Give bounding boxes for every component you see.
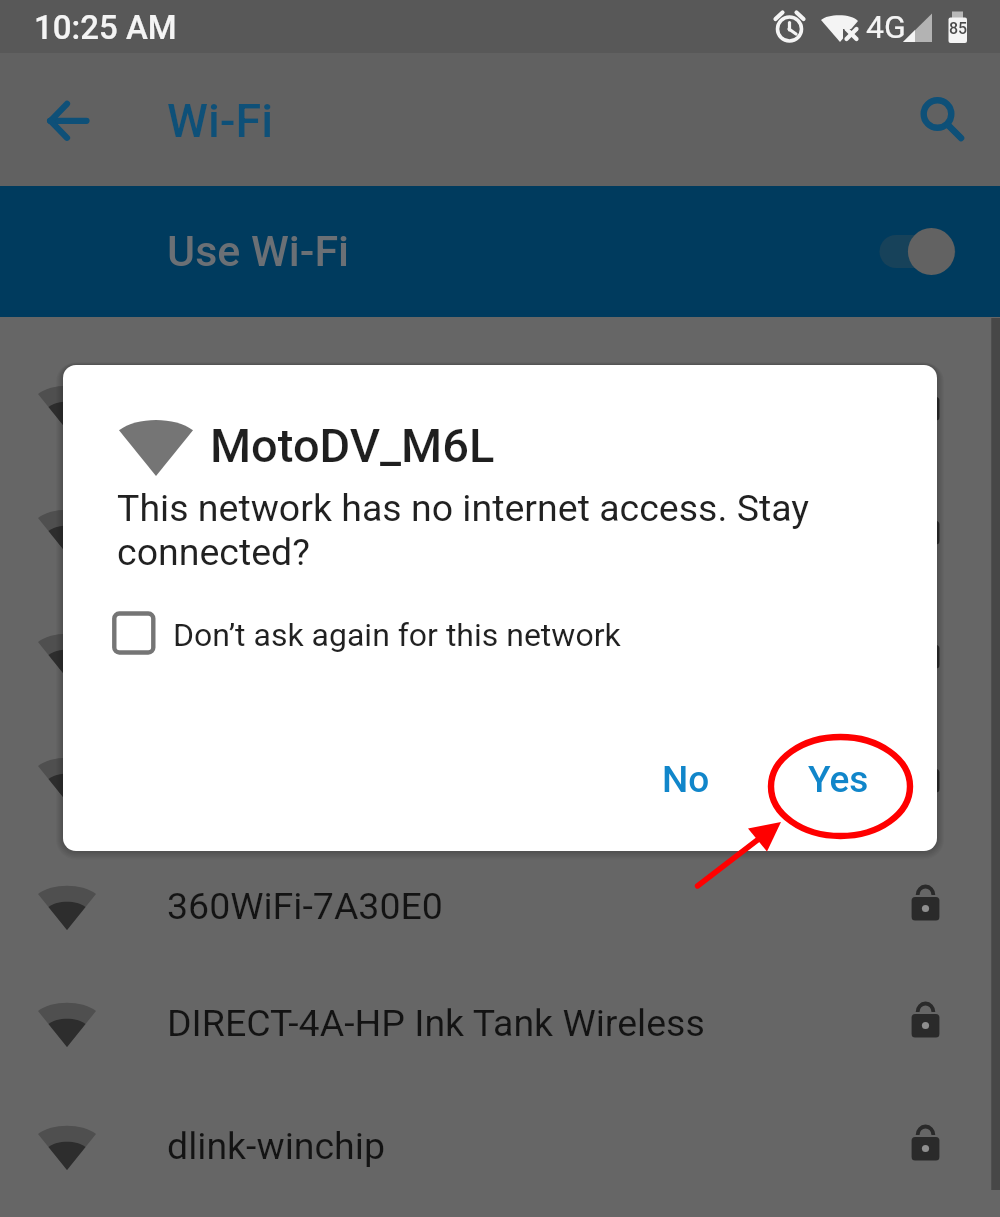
button[interactable]: HomeNet-5G: [0, 470, 1000, 590]
staticText: MotoDV_M6L: [167, 384, 394, 428]
staticText: Don’t ask again for this network: [173, 616, 621, 654]
staticText: CoffeeShop_Free: [167, 632, 453, 676]
button[interactable]: MotoDV_M6L: [0, 346, 1000, 466]
button[interactable]: CoffeeShop_Free: [0, 594, 1000, 714]
staticText: 10:25 AM: [34, 8, 177, 47]
button[interactable]: Use Wi-Fi: [0, 186, 1000, 317]
staticText: MotoDV_M6L: [210, 418, 495, 473]
staticText: Wi-Fi: [167, 94, 274, 148]
button[interactable]: Back: [28, 84, 104, 160]
staticText: No: [662, 758, 710, 801]
staticText: DIRECT-4A-HP Ink Tank Wireless: [167, 1001, 705, 1045]
staticText: dlink-winchip: [167, 1124, 385, 1168]
staticText: Use Wi-Fi: [167, 226, 350, 276]
staticText: 85: [944, 19, 972, 38]
button[interactable]: Don’t ask again for this network: [103, 605, 703, 665]
button[interactable]: No: [625, 739, 746, 819]
staticText: HomeNet-5G: [167, 508, 384, 552]
staticText: 4G: [866, 8, 906, 46]
button[interactable]: AndroidAP_2351: [0, 718, 1000, 838]
staticText: 360WiFi-7A30E0: [167, 884, 443, 928]
button[interactable]: DIRECT-4A-HP Ink Tank Wireless: [0, 963, 1000, 1083]
button[interactable]: dlink-winchip: [0, 1086, 1000, 1206]
staticText: Yes: [808, 758, 869, 801]
button[interactable]: 360WiFi-7A30E0: [0, 846, 1000, 966]
button[interactable]: Yes: [778, 739, 899, 819]
staticText: This network has no internet access. Sta…: [117, 486, 857, 574]
button[interactable]: Search: [900, 84, 976, 160]
